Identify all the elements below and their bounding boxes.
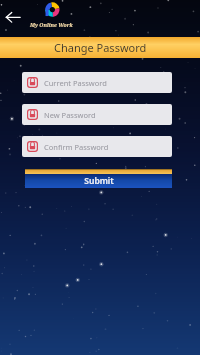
staticText: New Password bbox=[44, 110, 96, 120]
button[interactable]: Back bbox=[2, 6, 24, 28]
button[interactable]: Confirm Password bbox=[22, 136, 172, 157]
staticText: Submit bbox=[84, 175, 114, 187]
staticText: Confirm Password bbox=[44, 142, 109, 152]
button[interactable]: My Online Work bbox=[30, 2, 73, 28]
staticText: Current Password bbox=[44, 78, 107, 88]
button[interactable]: Submit bbox=[25, 169, 172, 188]
staticText: My Online Work bbox=[30, 21, 73, 28]
button[interactable]: Current Password bbox=[22, 72, 172, 93]
staticText: Change Password bbox=[54, 40, 147, 55]
button[interactable]: New Password bbox=[22, 104, 172, 125]
